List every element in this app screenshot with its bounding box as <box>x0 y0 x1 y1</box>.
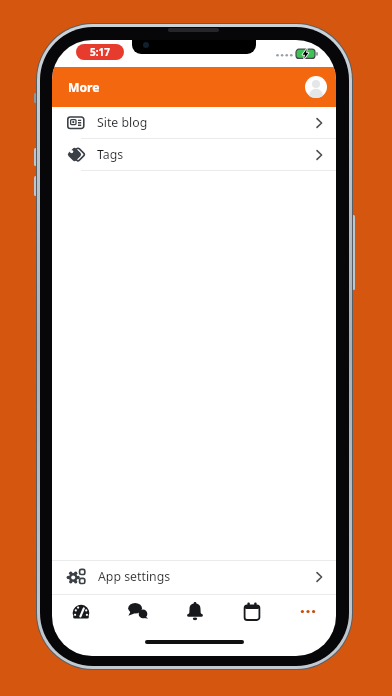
staticText: Tags <box>97 146 124 163</box>
button[interactable]: Site blog <box>52 107 336 138</box>
staticText: 5:17 <box>90 45 110 59</box>
staticText: Site blog <box>97 114 148 131</box>
button[interactable] <box>280 593 336 631</box>
button[interactable]: App settings <box>52 561 336 592</box>
staticText: App settings <box>98 568 171 585</box>
button[interactable] <box>52 593 109 631</box>
staticText: More <box>68 79 100 96</box>
button[interactable] <box>305 76 327 98</box>
button[interactable] <box>166 593 223 631</box>
button[interactable] <box>223 593 280 631</box>
button[interactable]: Tags <box>52 139 336 170</box>
button[interactable] <box>109 593 166 631</box>
